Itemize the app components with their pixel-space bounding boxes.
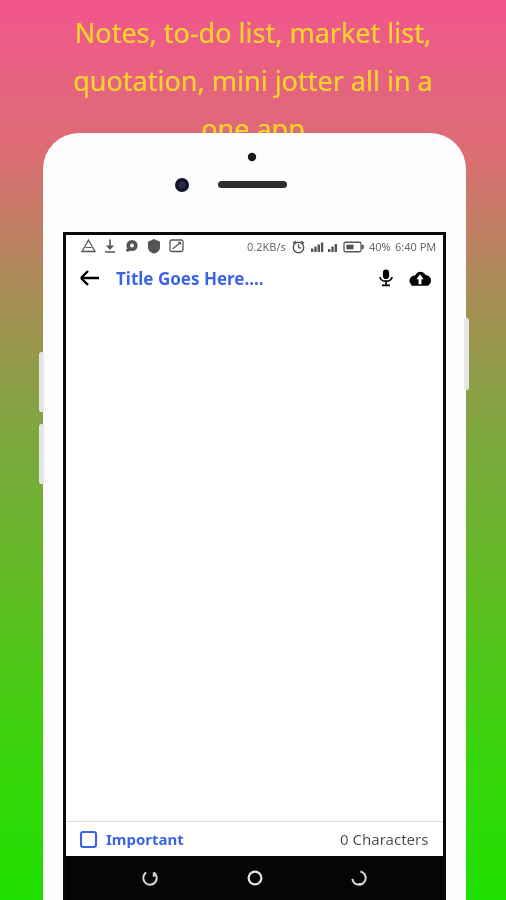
button[interactable]: Title Goes Here.... — [116, 267, 369, 290]
staticText: Title Goes Here.... — [116, 267, 264, 290]
staticText: 40% — [369, 239, 391, 254]
staticText: Notes, to-do list, market list, quotatio… — [22, 14, 484, 147]
button[interactable]: Voice input — [369, 261, 403, 295]
staticText: 6:40 PM — [395, 239, 437, 254]
button[interactable]: Important — [80, 829, 184, 849]
button[interactable]: Upload to cloud — [403, 261, 437, 295]
button[interactable]: Home — [235, 858, 275, 898]
staticText: 0.2KB/s — [247, 239, 286, 254]
staticText: 0 Characters — [340, 829, 429, 849]
button[interactable]: Recent apps — [130, 858, 170, 898]
staticText: Important — [106, 829, 184, 849]
button[interactable]: Back — [339, 858, 379, 898]
button[interactable]: Back — [72, 260, 108, 296]
